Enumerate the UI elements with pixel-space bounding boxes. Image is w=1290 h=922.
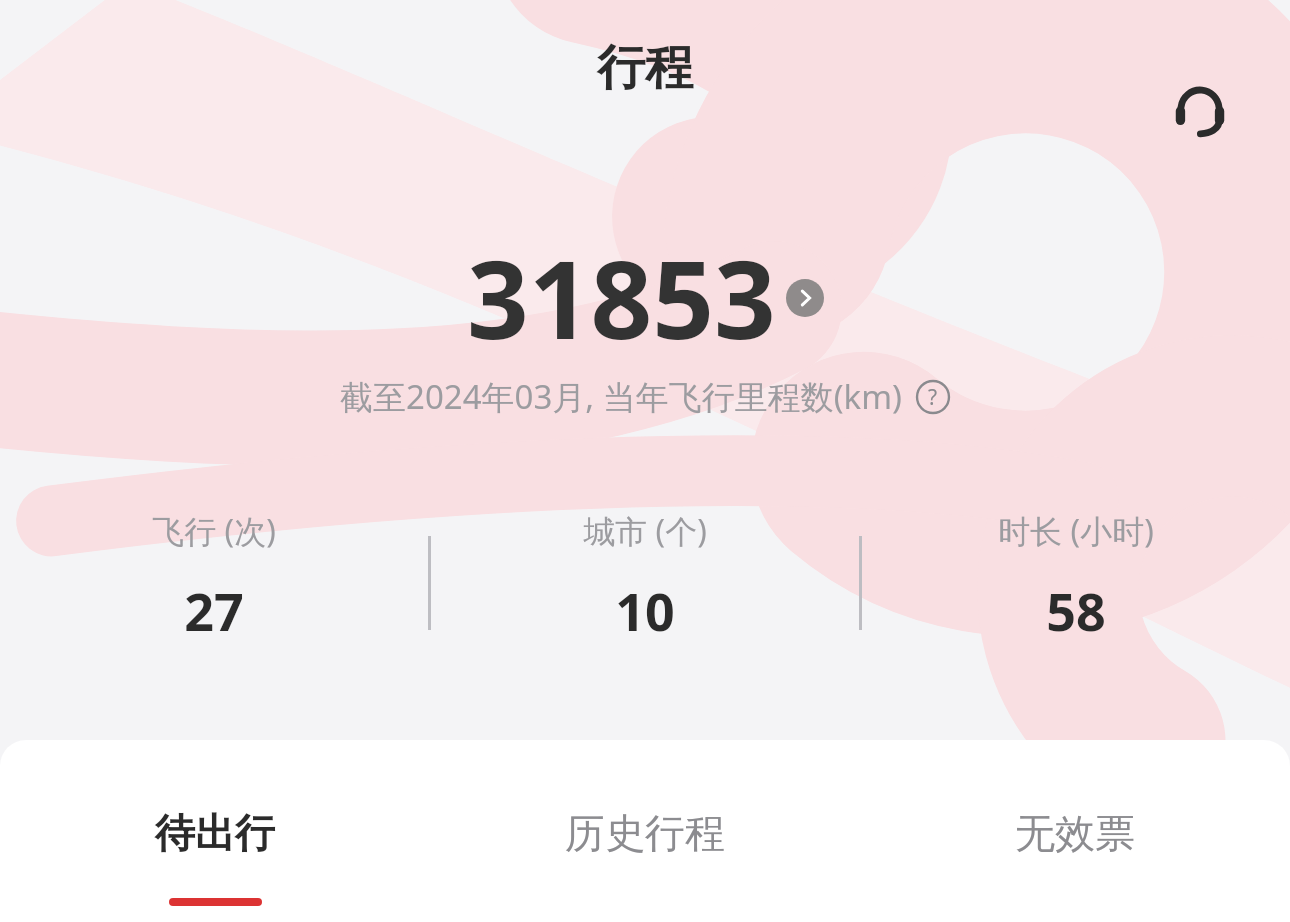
button[interactable]: Help — [915, 379, 951, 415]
button[interactable]: 历史行程 — [430, 740, 860, 922]
button[interactable]: 飞行 (次) — [0, 495, 428, 646]
button[interactable]: 时长 (小时) — [862, 495, 1290, 646]
staticText: 截至2024年03月, 当年飞行里程数(km) — [340, 374, 902, 419]
button[interactable]: 城市 (个) — [431, 495, 859, 646]
staticText: 待出行 — [155, 808, 275, 858]
staticText: ? — [928, 383, 938, 412]
staticText: 城市 (个) — [583, 509, 707, 553]
button[interactable]: 31853 — [467, 224, 824, 371]
staticText: 27 — [184, 575, 244, 646]
staticText: 历史行程 — [565, 808, 725, 858]
button[interactable]: 无效票 — [860, 740, 1290, 922]
staticText: 行程 — [597, 38, 693, 98]
button[interactable]: 待出行 — [0, 740, 430, 922]
staticText: 10 — [615, 575, 675, 646]
staticText: 时长 (小时) — [998, 509, 1154, 553]
staticText: 31853 — [467, 224, 776, 371]
button[interactable]: Customer service — [1150, 62, 1250, 162]
staticText: 58 — [1046, 575, 1106, 646]
staticText: 飞行 (次) — [152, 509, 276, 553]
staticText: 无效票 — [1015, 808, 1135, 858]
